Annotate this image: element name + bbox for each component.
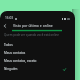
staticText: Todos	[4, 43, 13, 47]
staticText: Meus contatos	[4, 51, 26, 55]
staticText: Visto por último e online	[13, 23, 53, 28]
staticText: 16:03	[5, 16, 14, 20]
button[interactable]: Ninguém	[0, 65, 75, 73]
button[interactable]: Voltar	[0, 21, 9, 30]
staticText: Quem pode ver quando você está online	[4, 33, 59, 37]
button[interactable]: Meus contatos	[0, 49, 75, 57]
button[interactable]: Todos	[0, 41, 75, 49]
staticText: Ninguém	[4, 67, 18, 71]
button[interactable]: Meus contatos, exceto	[0, 57, 75, 65]
staticText: Meus contatos, exceto	[4, 59, 37, 63]
